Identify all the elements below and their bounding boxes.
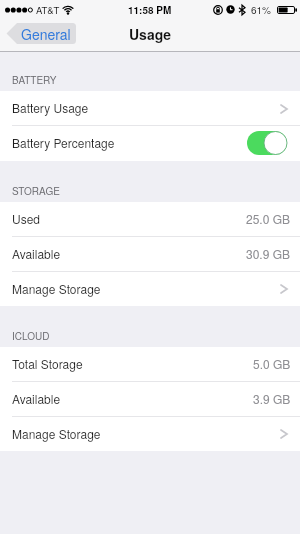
staticText: 11:58 PM	[128, 3, 172, 17]
button[interactable]: Battery Percentage	[0, 126, 300, 161]
button[interactable]: Battery Usage	[0, 91, 300, 126]
staticText: 3.9 GB	[253, 390, 291, 407]
staticText: Available	[12, 390, 61, 407]
staticText: STORAGE	[12, 184, 60, 198]
staticText: Usage	[129, 24, 172, 44]
staticText: Available	[12, 245, 61, 262]
other: Rotation lock	[213, 5, 223, 15]
button[interactable]: Used	[0, 202, 300, 237]
button[interactable]: Available	[0, 237, 300, 272]
staticText: Manage Storage	[12, 280, 101, 297]
staticText: Used	[12, 210, 41, 227]
staticText: 5.0 GB	[253, 355, 291, 372]
button[interactable]: Back to General	[6, 23, 76, 44]
staticText: Battery Usage	[12, 99, 89, 116]
button[interactable]: Manage Storage	[0, 417, 300, 451]
staticText: AT&T	[36, 3, 60, 17]
staticText: 25.0 GB	[246, 210, 291, 227]
staticText: 30.9 GB	[246, 245, 291, 262]
button[interactable]: Total Storage	[0, 347, 300, 382]
staticText: Total Storage	[12, 355, 83, 372]
other: Alarm	[226, 5, 235, 14]
staticText: Battery Percentage	[12, 134, 115, 151]
staticText: ICLOUD	[12, 329, 50, 343]
staticText: General	[21, 24, 71, 44]
button[interactable]: Battery Percentage toggle, on	[247, 131, 288, 155]
button[interactable]: Available	[0, 382, 300, 417]
button[interactable]: Manage Storage	[0, 272, 300, 306]
staticText: BATTERY	[12, 73, 57, 87]
staticText: 61%	[251, 3, 272, 17]
staticText: Manage Storage	[12, 425, 101, 442]
